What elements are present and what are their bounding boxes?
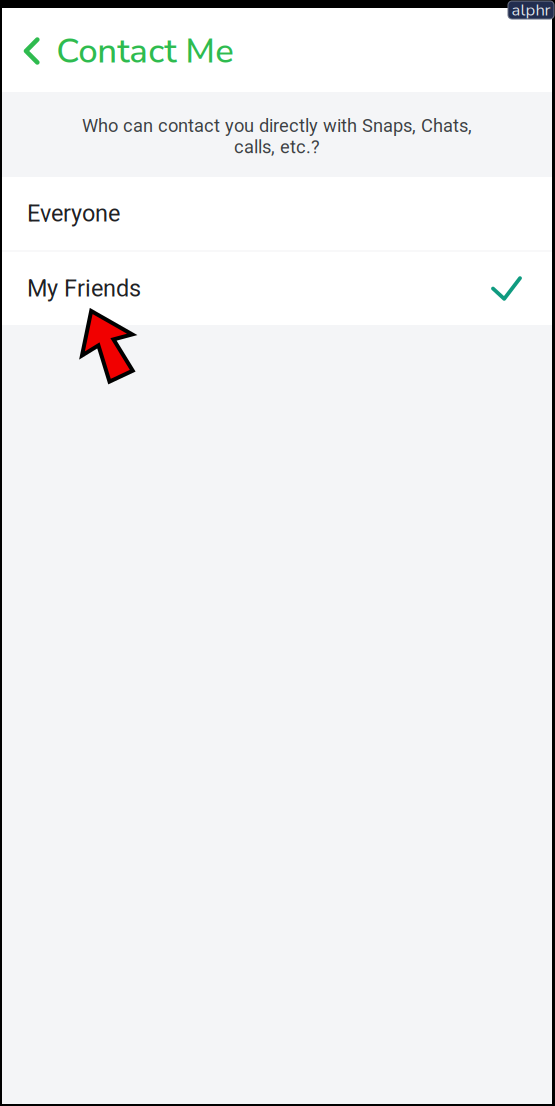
button[interactable]: My Friends bbox=[2, 252, 552, 325]
button[interactable]: Everyone bbox=[2, 177, 552, 250]
staticText: My Friends bbox=[27, 275, 141, 302]
button[interactable]: Back bbox=[2, 9, 56, 93]
staticText: Contact Me bbox=[56, 27, 234, 75]
staticText: alphr bbox=[511, 0, 550, 21]
staticText: Everyone bbox=[27, 200, 120, 227]
staticText: calls, etc.? bbox=[234, 136, 320, 158]
staticText: Who can contact you directly with Snaps,… bbox=[82, 115, 472, 136]
